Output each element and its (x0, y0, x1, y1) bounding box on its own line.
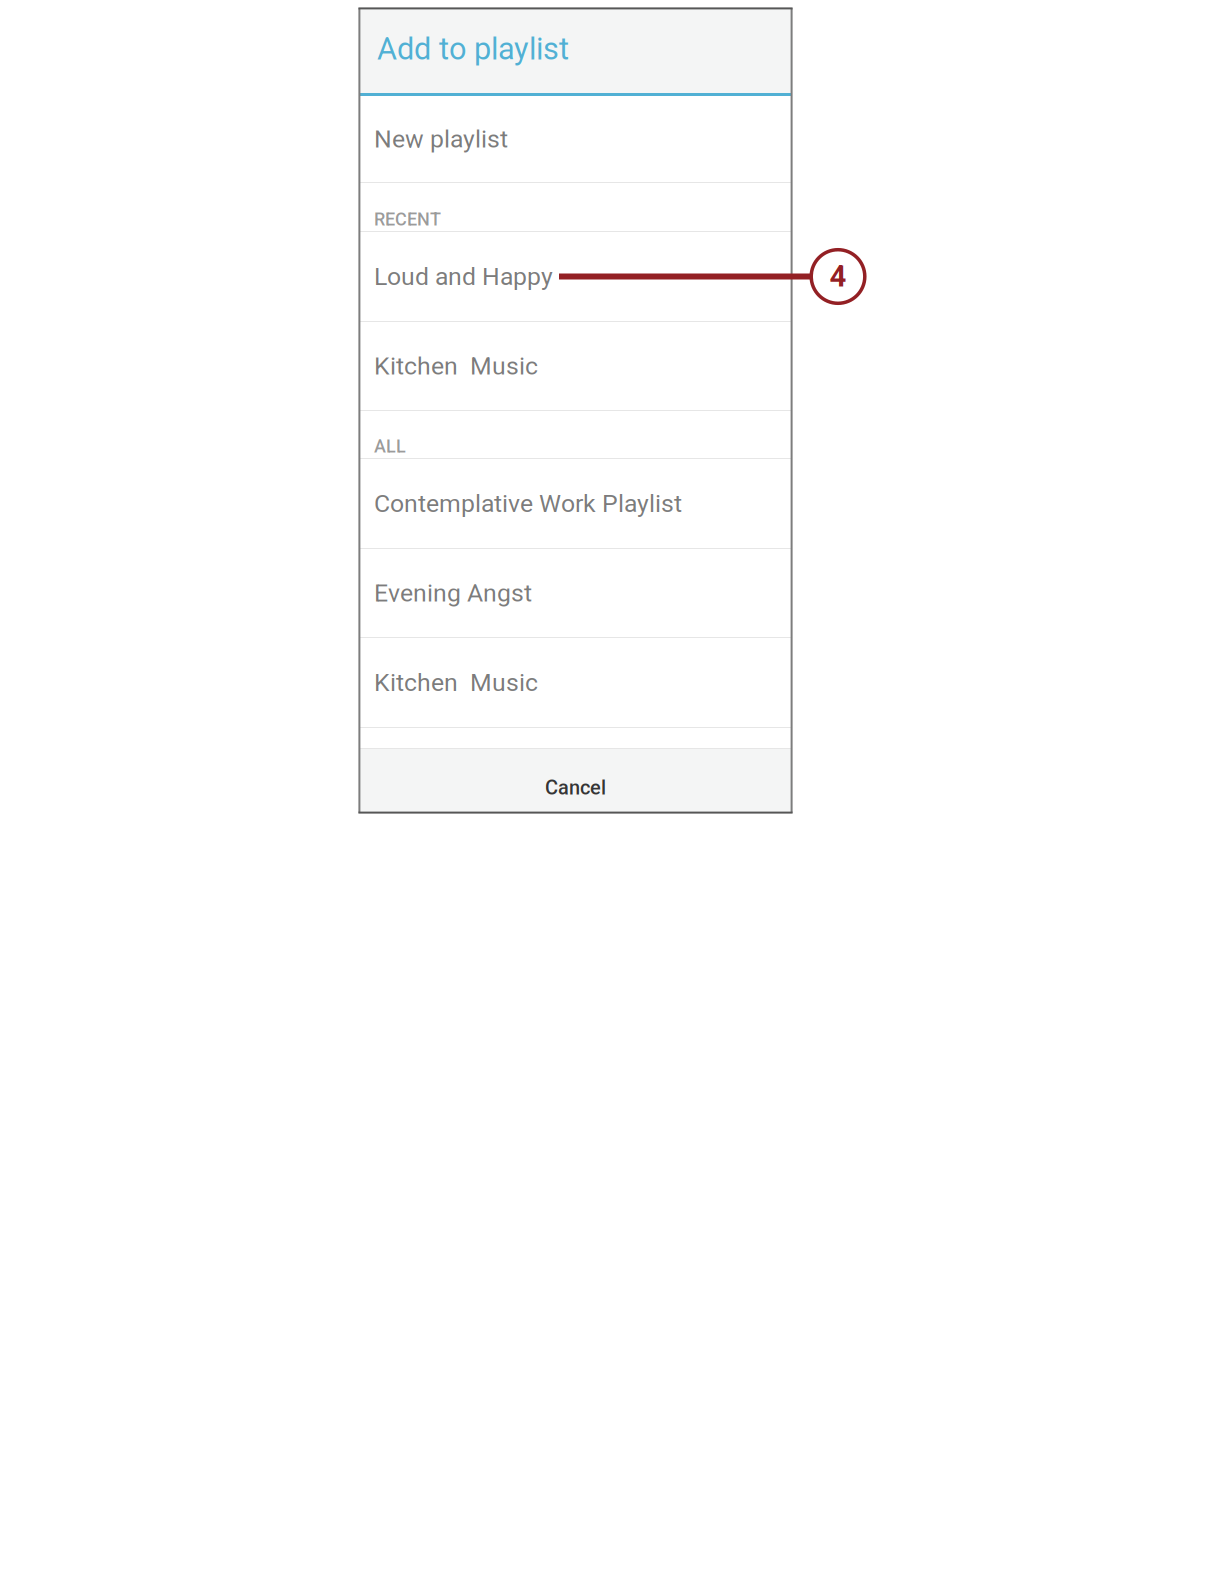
staticText: 4 (829, 259, 846, 294)
staticText: Evening Angst (374, 578, 532, 608)
staticText: New playlist (374, 124, 508, 154)
staticText: Kitchen Music (374, 668, 538, 697)
staticText: RECENT (374, 209, 441, 230)
staticText: Contemplative Work Playlist (374, 489, 682, 518)
button[interactable]: Loud and Happy (360, 232, 791, 321)
staticText: Cancel (545, 776, 606, 799)
button[interactable]: Cancel (360, 749, 791, 812)
button[interactable]: Evening Angst (360, 549, 791, 637)
button[interactable]: Kitchen Music (360, 322, 791, 410)
button[interactable]: Kitchen Music (360, 638, 791, 727)
staticText: ALL (374, 436, 406, 457)
staticText: Loud and Happy (374, 262, 553, 291)
button[interactable]: New playlist (360, 96, 791, 182)
staticText: Kitchen Music (374, 351, 538, 381)
staticText: Add to playlist (377, 31, 569, 67)
button[interactable]: More playlists (360, 728, 791, 748)
button[interactable]: Contemplative Work Playlist (360, 459, 791, 548)
